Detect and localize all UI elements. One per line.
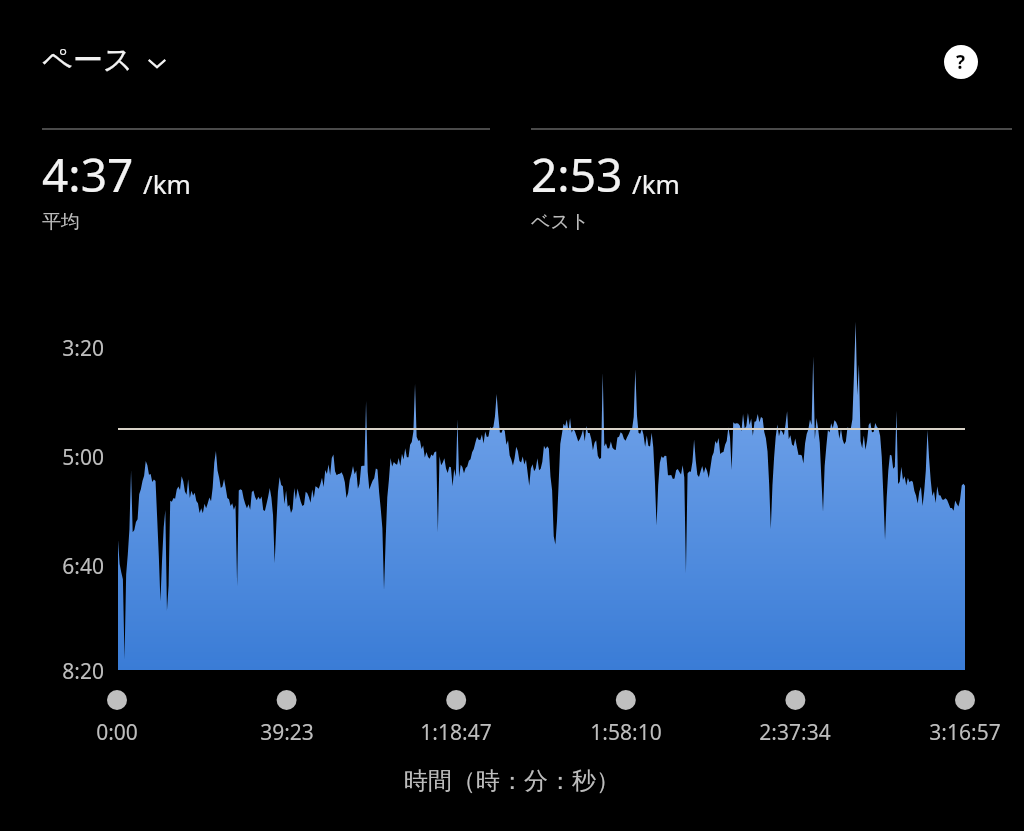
staticText: 1:18:47 <box>366 718 546 747</box>
staticText: ? <box>956 49 966 75</box>
staticText: 6:40 <box>0 552 104 581</box>
staticText: ペース <box>42 41 134 79</box>
staticText: 0:00 <box>27 718 207 747</box>
staticText: 39:23 <box>197 718 377 747</box>
staticText: 5:00 <box>0 443 104 472</box>
staticText: 時間（時：分：秒） <box>0 766 1024 796</box>
staticText: 3:16:57 <box>875 718 1024 747</box>
staticText: ベスト <box>531 210 590 234</box>
staticText: 2:37:34 <box>705 718 885 747</box>
staticText: 4:37 <box>42 143 134 206</box>
staticText: 3:20 <box>0 334 104 363</box>
button[interactable]: Help <box>939 40 983 84</box>
staticText: 2:53 <box>531 143 623 206</box>
staticText: 1:58:10 <box>536 718 716 747</box>
staticText: 平均 <box>42 210 80 234</box>
staticText: 8:20 <box>0 657 104 686</box>
button[interactable]: ペース <box>42 41 170 79</box>
staticText: /km <box>143 166 191 201</box>
staticText: /km <box>632 166 680 201</box>
